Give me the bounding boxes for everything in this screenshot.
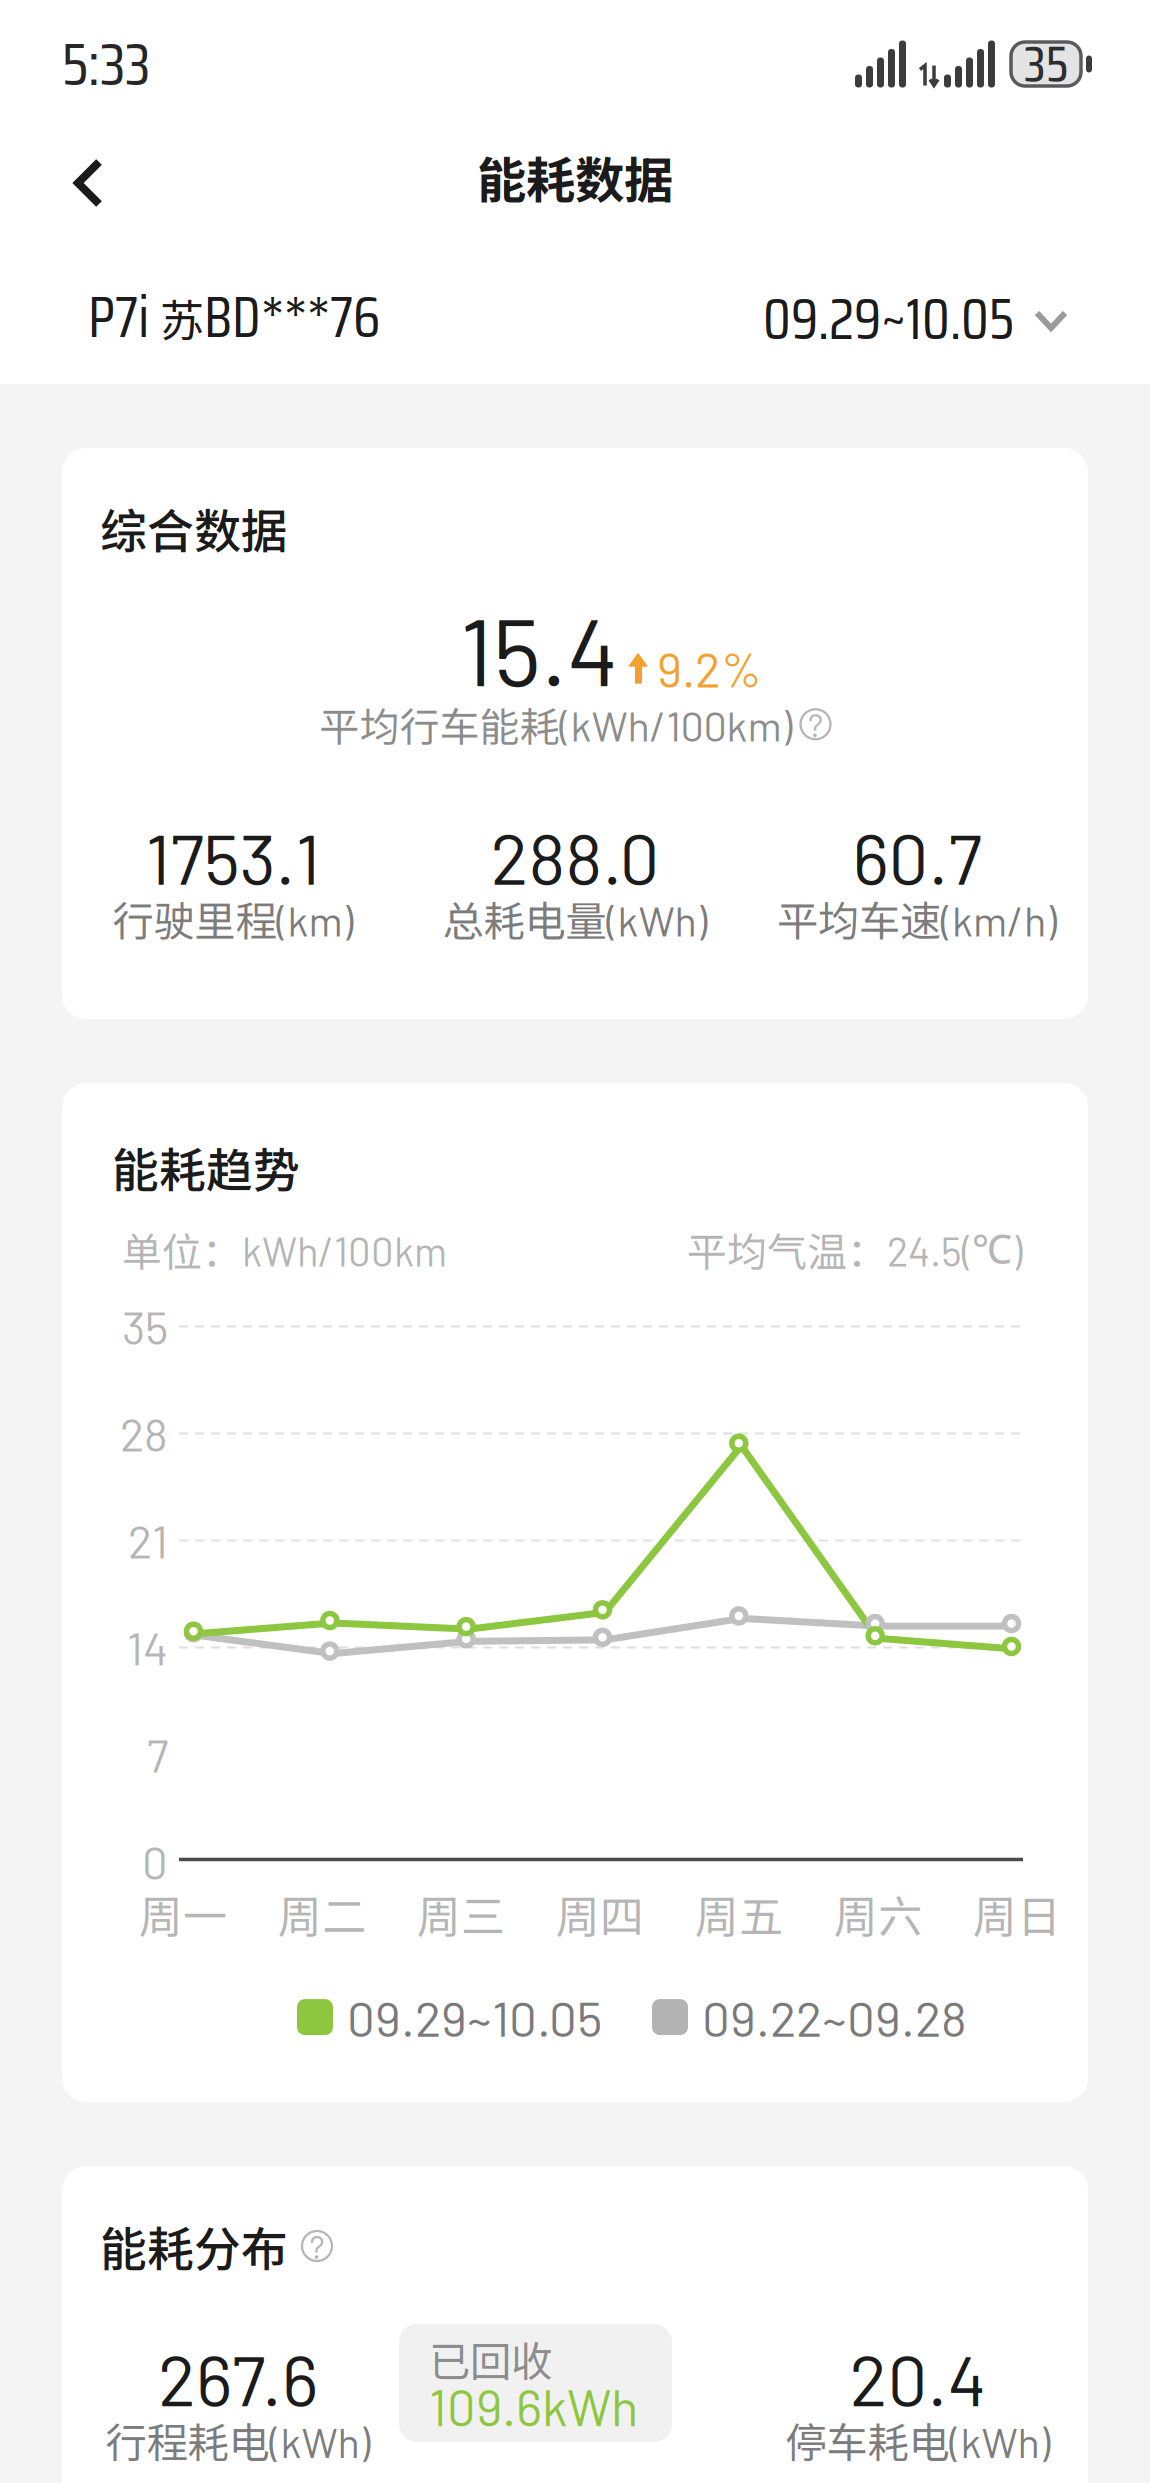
staticText: 267.6 bbox=[158, 2336, 318, 2420]
staticText: 0 bbox=[142, 1834, 168, 1889]
staticText: 20.4 bbox=[849, 2336, 986, 2420]
staticText: ? bbox=[808, 705, 823, 744]
staticText: 7 bbox=[147, 1727, 168, 1782]
staticText: 已回收 bbox=[429, 2329, 552, 2389]
staticText: 平均气温：24.5(℃) bbox=[687, 1221, 1022, 1277]
button[interactable]: 能耗分布说明 bbox=[302, 2231, 332, 2261]
staticText: 1753.1 bbox=[145, 814, 320, 899]
staticText: 35 bbox=[1024, 24, 1068, 104]
staticText: 周日 bbox=[973, 1882, 1061, 1945]
staticText: 周五 bbox=[695, 1882, 783, 1945]
staticText: 停车耗电(kWh) bbox=[785, 2411, 1050, 2469]
staticText: 15.4 bbox=[460, 593, 618, 705]
staticText: 周三 bbox=[417, 1882, 505, 1945]
button[interactable]: 返回 bbox=[70, 145, 166, 241]
staticText: ? bbox=[309, 2226, 324, 2266]
staticText: 单位：kWh/100km bbox=[122, 1221, 447, 1277]
staticText: 5:33 bbox=[62, 17, 150, 111]
staticText: 能耗分布 bbox=[100, 2212, 288, 2280]
staticText: 周一 bbox=[139, 1882, 227, 1945]
staticText: 平均车速(km/h) bbox=[777, 889, 1057, 948]
staticText: 109.6kWh bbox=[429, 2376, 638, 2436]
staticText: 14 bbox=[127, 1620, 168, 1675]
staticText: 周四 bbox=[556, 1882, 644, 1945]
staticText: 行驶里程(km) bbox=[112, 889, 353, 948]
staticText: 总耗电量(kWh) bbox=[442, 889, 707, 948]
staticText: 周六 bbox=[834, 1882, 922, 1945]
staticText: 09.29~10.05 bbox=[763, 274, 1014, 364]
staticText: P7i 苏BD***76 bbox=[88, 273, 380, 361]
staticText: 288.0 bbox=[490, 814, 659, 899]
staticText: 21 bbox=[128, 1513, 168, 1568]
staticText: 09.22~09.28 bbox=[702, 1987, 967, 2047]
staticText: 能耗趋势 bbox=[112, 1133, 300, 1201]
staticText: 周二 bbox=[278, 1882, 366, 1945]
staticText: 行程耗电(kWh) bbox=[105, 2411, 370, 2469]
staticText: 28 bbox=[120, 1406, 168, 1461]
staticText: 35 bbox=[122, 1299, 168, 1354]
staticText: 平均行车能耗(kWh/100km) bbox=[319, 696, 792, 752]
button[interactable]: 09.29~10.05 bbox=[763, 276, 1068, 366]
staticText: 09.29~10.05 bbox=[347, 1987, 602, 2047]
staticText: 60.7 bbox=[852, 814, 981, 899]
staticText: 综合数据 bbox=[100, 494, 288, 562]
button[interactable]: 平均行车能耗说明 bbox=[800, 709, 830, 739]
staticText: 9.2% bbox=[657, 639, 762, 697]
staticText: 能耗数据 bbox=[477, 141, 673, 213]
